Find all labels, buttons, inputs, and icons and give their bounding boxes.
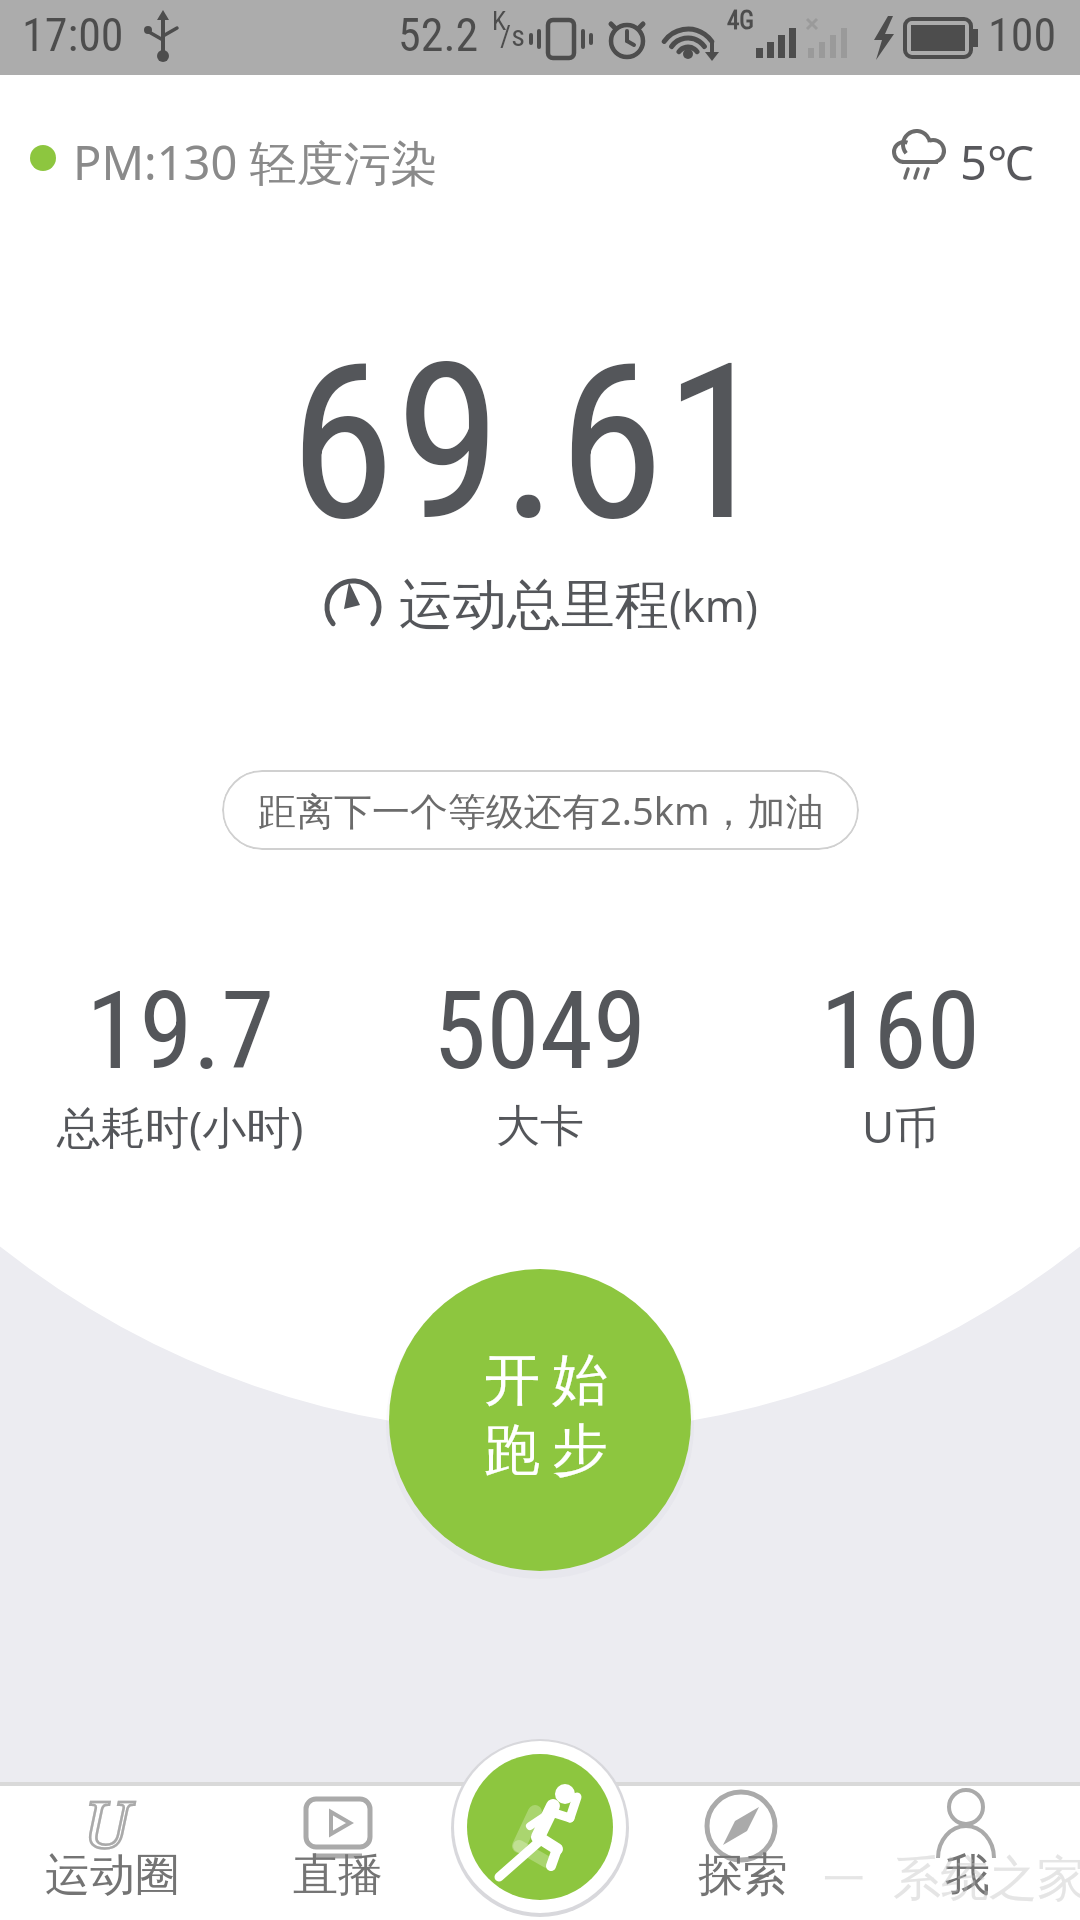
button[interactable] xyxy=(453,1740,627,1914)
staticText: 5049 xyxy=(433,968,647,1088)
staticText: 100 xyxy=(988,8,1057,62)
button[interactable]: 运动圈 xyxy=(25,1788,200,1918)
staticText: U xyxy=(84,1780,131,1867)
staticText: 距离下一个等级还有2.5km，加油 xyxy=(258,784,824,836)
button[interactable]: 距离下一个等级还有2.5km，加油 xyxy=(222,770,859,850)
staticText: /s xyxy=(500,18,525,53)
staticText: 运动总里程 xyxy=(399,571,669,639)
staticText: PM:130 轻度污染 xyxy=(73,130,438,194)
staticText: 系统之家 xyxy=(893,1849,1080,1909)
staticText: 5℃ xyxy=(960,130,1034,194)
staticText: 直播 xyxy=(293,1847,383,1904)
staticText: 一 xyxy=(823,1854,865,1907)
button[interactable]: 探索 xyxy=(655,1788,830,1918)
staticText: 69.61 xyxy=(289,318,771,542)
staticText: 52.2 xyxy=(398,8,479,62)
button[interactable]: 开始 跑步 xyxy=(389,1269,691,1571)
staticText: U币 xyxy=(862,1096,939,1156)
staticText: 运动圈 xyxy=(45,1847,180,1904)
staticText: 17:00 xyxy=(22,8,124,62)
staticText: 总耗时(小时) xyxy=(57,1096,304,1156)
staticText: 探索 xyxy=(698,1847,788,1904)
staticText: 4G xyxy=(727,6,755,35)
staticText: 开始 跑步 xyxy=(478,1345,614,1486)
button[interactable]: 我 xyxy=(880,1788,1055,1918)
staticText: 160 xyxy=(820,968,980,1088)
button[interactable]: 直播 xyxy=(250,1788,425,1918)
staticText: (km) xyxy=(669,576,758,635)
staticText: K xyxy=(492,6,507,36)
staticText: 大卡 xyxy=(496,1099,584,1154)
staticText: 我 xyxy=(945,1847,990,1904)
staticText: 19.7 xyxy=(86,968,275,1088)
